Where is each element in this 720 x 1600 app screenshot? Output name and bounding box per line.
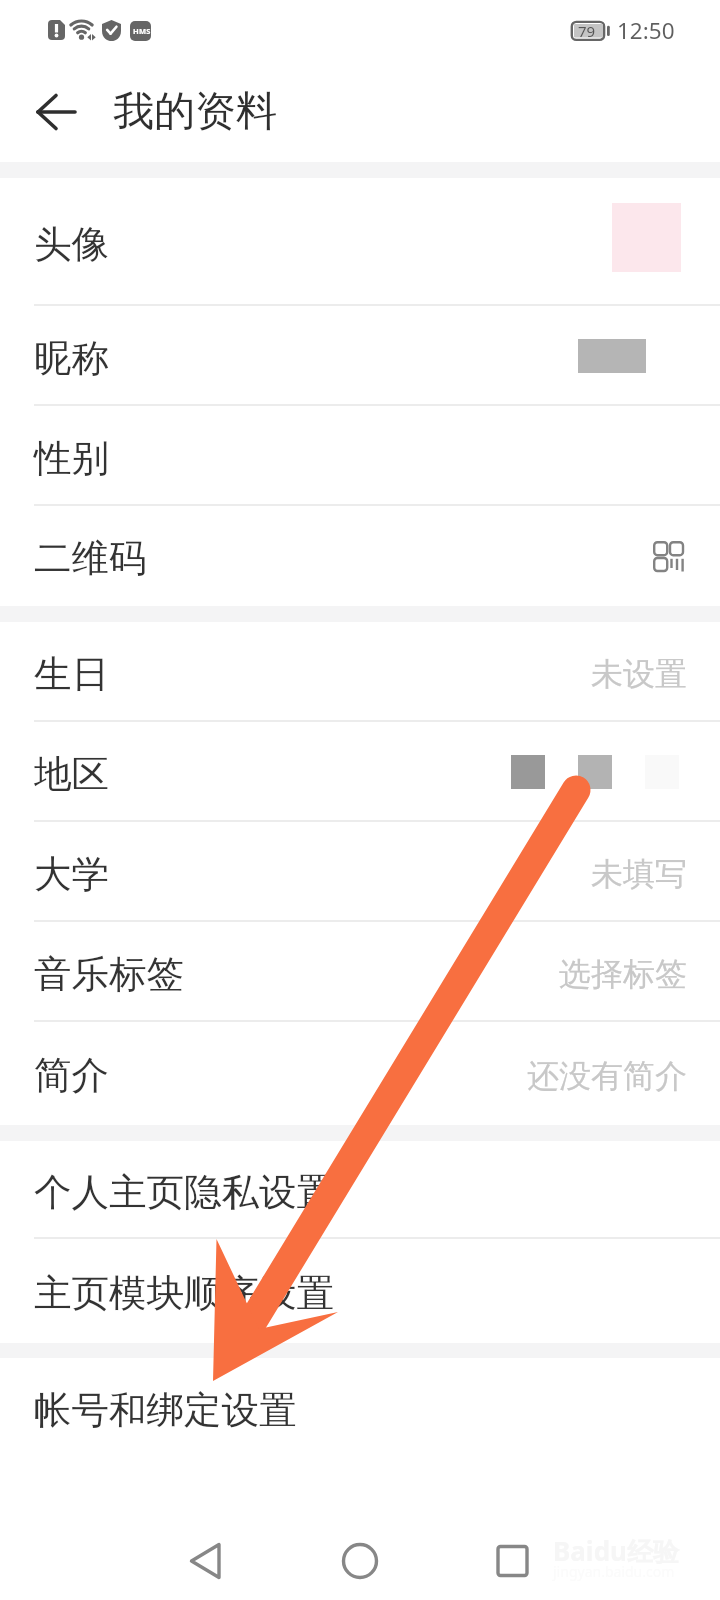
staticText: 未填写 xyxy=(591,854,687,894)
staticText: 大学 xyxy=(34,851,109,898)
staticText: 昵称 xyxy=(34,335,109,382)
button[interactable]: 简介 xyxy=(0,1022,720,1125)
button[interactable]: 生日 xyxy=(0,622,720,722)
staticText: 选择标签 xyxy=(559,954,687,994)
button[interactable]: 性别 xyxy=(0,406,720,506)
staticText: 个人主页隐私设置 xyxy=(34,1169,334,1216)
button[interactable]: 音乐标签 xyxy=(0,922,720,1022)
staticText: 头像 xyxy=(34,221,109,268)
staticText: 二维码 xyxy=(34,535,147,582)
staticText: 简介 xyxy=(34,1052,109,1099)
button[interactable]: 帐号和绑定设置 xyxy=(0,1358,720,1458)
staticText: 地区 xyxy=(34,751,109,798)
staticText: Baidu经验 xyxy=(553,1533,679,1569)
button[interactable]: 头像 xyxy=(0,178,720,306)
staticText: 性别 xyxy=(34,435,109,482)
button[interactable]: 个人主页隐私设置 xyxy=(0,1141,720,1239)
staticText: 12:50 xyxy=(617,15,675,46)
button[interactable]: Home xyxy=(240,1490,480,1600)
staticText: 生日 xyxy=(34,651,109,698)
button[interactable]: Recents xyxy=(480,1490,720,1600)
staticText: HMS xyxy=(133,26,151,36)
button[interactable]: 二维码 xyxy=(0,506,720,606)
staticText: 帐号和绑定设置 xyxy=(34,1387,297,1434)
button[interactable]: 地区 xyxy=(0,722,720,822)
button[interactable]: 大学 xyxy=(0,822,720,922)
button[interactable]: 昵称 xyxy=(0,306,720,406)
button[interactable]: 主页模块顺序设置 xyxy=(0,1239,720,1343)
button[interactable]: Back xyxy=(0,64,96,160)
staticText: 还没有简介 xyxy=(527,1056,687,1096)
staticText: 我的资料 xyxy=(113,86,277,138)
staticText: 未设置 xyxy=(591,654,687,694)
staticText: 主页模块顺序设置 xyxy=(34,1270,334,1317)
staticText: 音乐标签 xyxy=(34,951,184,998)
button[interactable]: Back xyxy=(0,1490,240,1600)
staticText: 79 xyxy=(578,21,596,41)
